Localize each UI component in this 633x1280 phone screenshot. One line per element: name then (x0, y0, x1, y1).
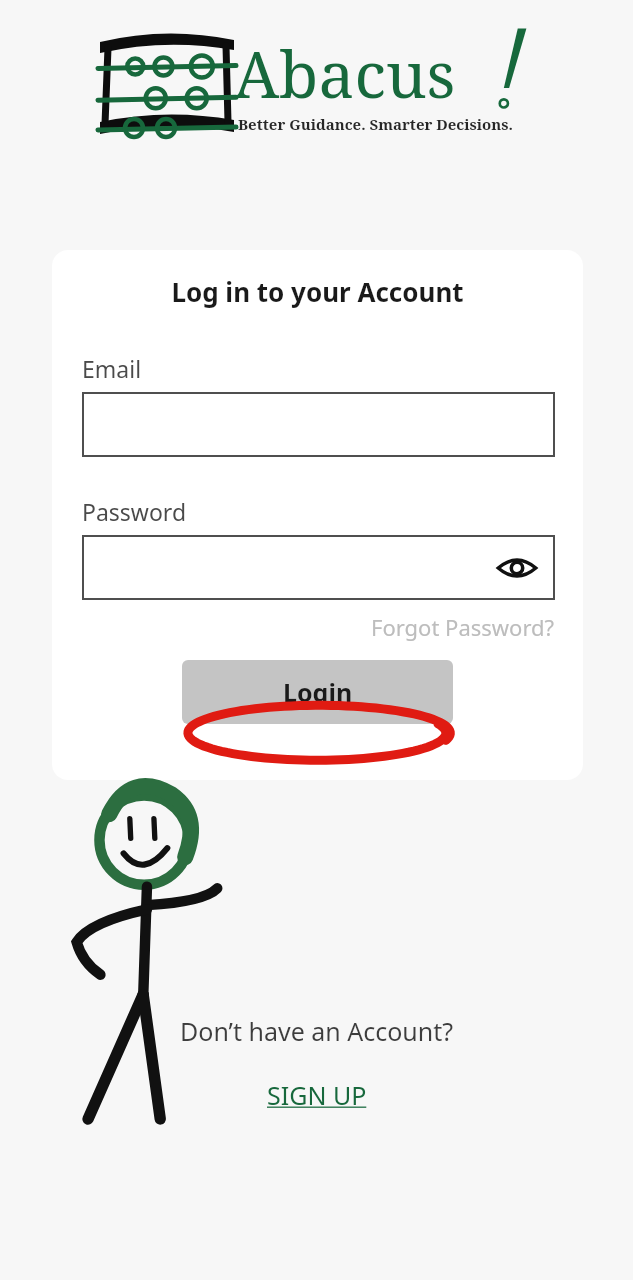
staticText: Abacus (234, 30, 456, 117)
staticText: Log in to your Account (52, 274, 583, 309)
button[interactable] (82, 392, 555, 457)
button[interactable]: Forgot Password? (371, 612, 555, 642)
button[interactable]: Show password (493, 544, 541, 592)
staticText: Email (82, 353, 142, 384)
staticText: Login (283, 675, 353, 709)
staticText: Don’t have an Account? (180, 1014, 454, 1048)
button[interactable]: SIGN UP (267, 1078, 367, 1112)
staticText: Better Guidance. Smarter Decisions. (238, 114, 513, 134)
button[interactable]: Login (182, 660, 453, 724)
button[interactable]: Show password (82, 535, 555, 600)
staticText: Password (82, 496, 187, 527)
